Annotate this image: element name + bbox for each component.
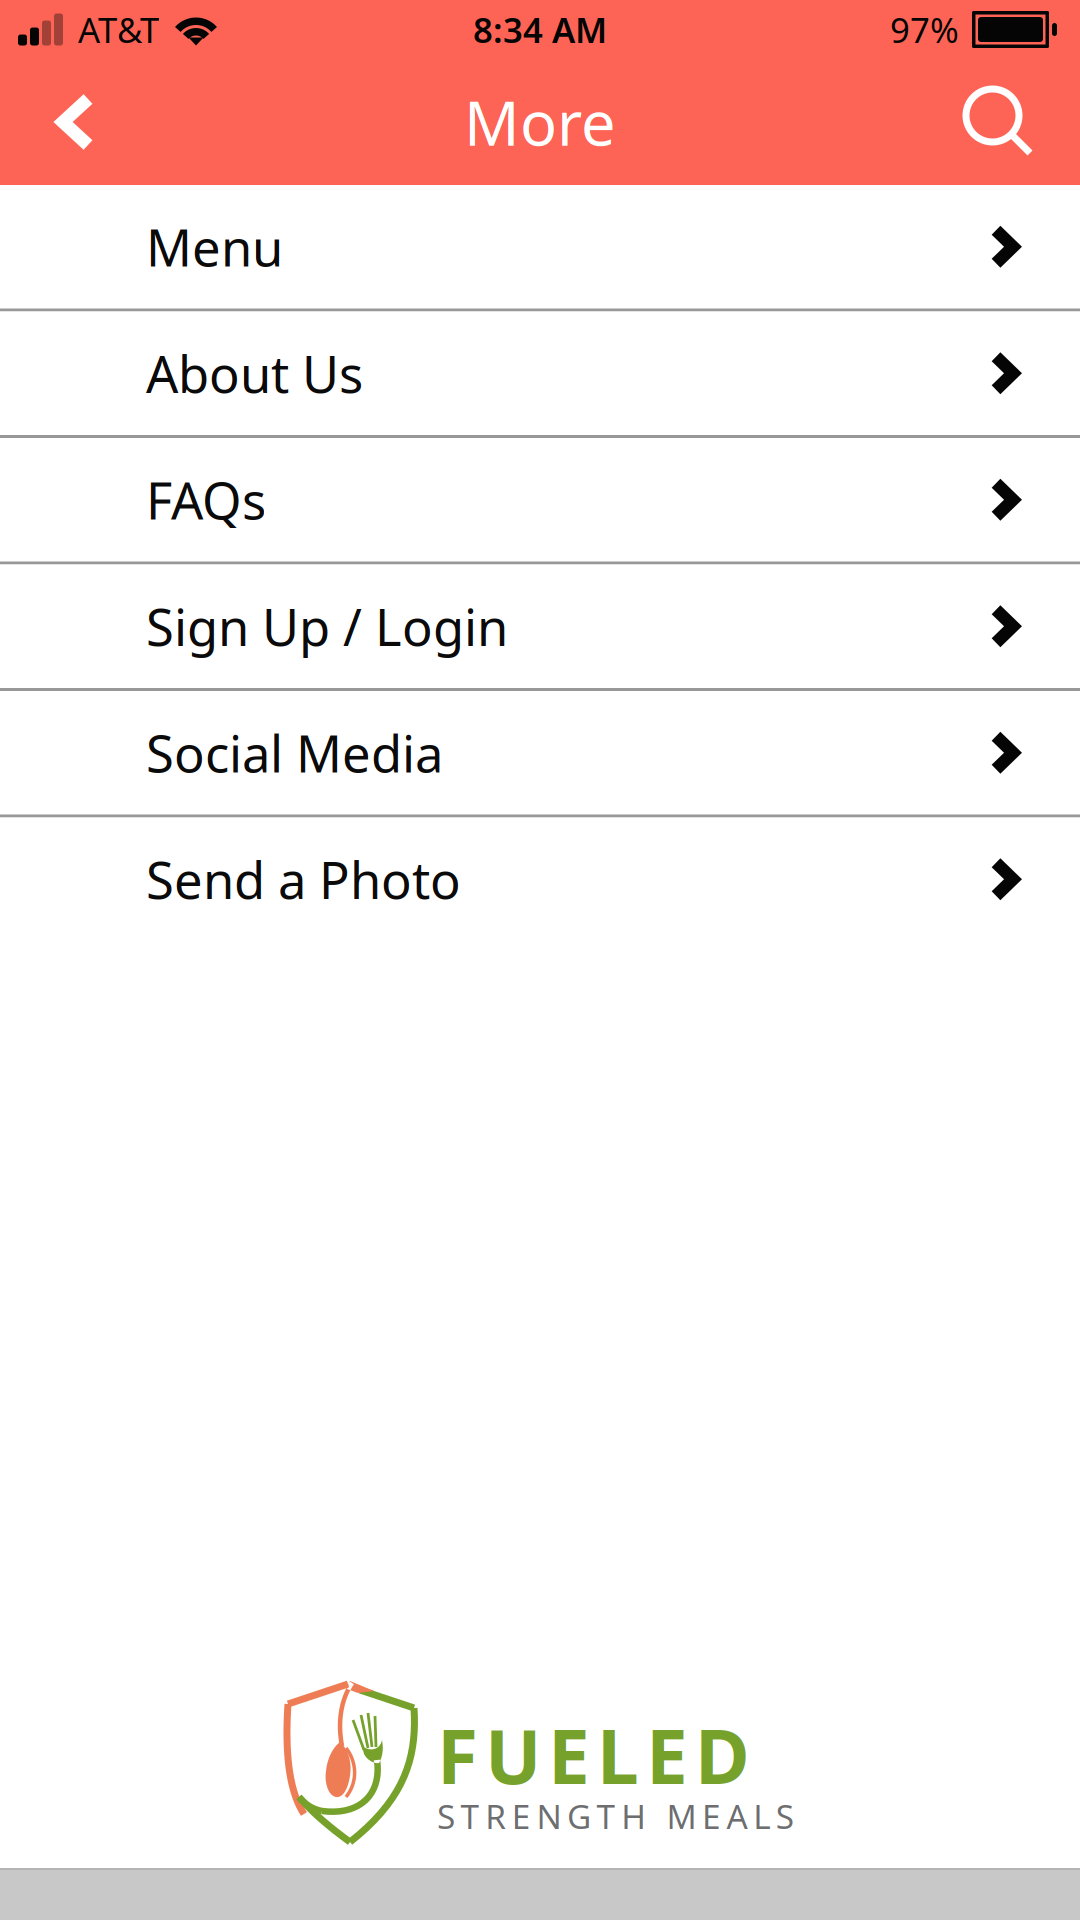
button[interactable]: Send a Photo [0,817,1080,941]
button[interactable]: Sign Up / Login [0,564,1080,688]
button[interactable]: About Us [0,311,1080,435]
staticText: Social Media [146,719,443,786]
staticText: 8:34 AM [473,6,607,52]
button[interactable]: Back [0,59,150,185]
staticText: Send a Photo [146,846,461,913]
staticText: Sign Up / Login [146,593,508,660]
staticText: About Us [146,340,363,407]
staticText: STRENGTH MEALS [437,1794,794,1838]
staticText: FAQs [146,466,266,533]
button[interactable]: Search [918,59,1080,185]
staticText: Menu [146,213,283,280]
staticText: FUELED [437,1705,750,1805]
staticText: 97% [890,6,959,52]
button[interactable]: FAQs [0,438,1080,561]
staticText: AT&T [78,6,159,52]
staticText: More [464,81,616,163]
button[interactable]: Menu [0,185,1080,308]
button[interactable]: Social Media [0,691,1080,814]
